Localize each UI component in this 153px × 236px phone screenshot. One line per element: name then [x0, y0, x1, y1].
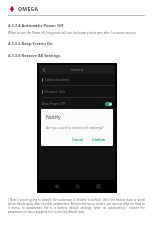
button[interactable]: Tablet data limit: [39, 74, 115, 86]
button[interactable]: Cancel: [69, 136, 86, 143]
staticText: [ Note ] you're going to classify the au…: [8, 198, 145, 214]
staticText: Cancel: [72, 137, 83, 142]
staticText: Tablet data limit: [45, 78, 69, 82]
button[interactable]: Back: [39, 65, 48, 74]
staticText: Keep Screen On: [42, 114, 105, 118]
staticText: Distance Unit: [45, 90, 66, 94]
button[interactable]: Distance Unit: [39, 86, 115, 98]
staticText: Notify: [46, 114, 61, 121]
button[interactable]: Home: [73, 182, 81, 190]
button[interactable]: Keep Screen On: [39, 110, 115, 122]
staticText: Confirm: [92, 137, 106, 142]
button[interactable]: Recent apps: [94, 182, 102, 190]
staticText: Are you sure to restore all settings?: [46, 125, 104, 130]
staticText: 4.3.3.4 Automatic Power Off: [8, 23, 64, 28]
staticText: 4.3.3.6 Restore All Settings: [8, 53, 61, 58]
staticText: When to turn the Power off, long press w…: [8, 31, 137, 35]
button[interactable]: Auto Power Off: [39, 98, 115, 110]
button[interactable]: Back: [52, 182, 60, 190]
staticText: Auto Power Off: [42, 102, 105, 106]
staticText: 4.3.3.5 Keep Screen On: [8, 41, 53, 46]
button[interactable]: Confirm: [89, 136, 109, 143]
staticText: OMEGA: [18, 5, 39, 12]
staticText: General: [71, 67, 84, 72]
